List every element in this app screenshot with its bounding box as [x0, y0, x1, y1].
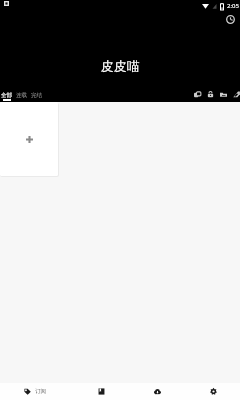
staticText: 2:05	[227, 2, 239, 10]
button[interactable]: 完结	[29, 84, 45, 102]
staticText: 订阅	[35, 388, 47, 395]
staticText: 连载	[16, 92, 28, 99]
staticText: 完结	[31, 92, 43, 99]
button[interactable]: Display mode	[191, 85, 204, 102]
button[interactable]: Bookshelf	[84, 383, 118, 400]
button[interactable]: Settings	[196, 383, 230, 400]
button[interactable]: Edit	[230, 85, 240, 102]
button[interactable]: 连载	[14, 84, 30, 102]
button[interactable]: Downloads	[140, 383, 174, 400]
button[interactable]: Subscriptions	[12, 383, 58, 400]
staticText: 全部	[1, 92, 13, 99]
button[interactable]: History	[222, 11, 239, 28]
button[interactable]: Add comic	[0, 102, 58, 176]
button[interactable]: Folder	[217, 85, 230, 102]
button[interactable]: 全部	[0, 84, 15, 102]
button[interactable]: Lock	[204, 85, 217, 102]
staticText: 皮皮喵	[101, 58, 140, 74]
